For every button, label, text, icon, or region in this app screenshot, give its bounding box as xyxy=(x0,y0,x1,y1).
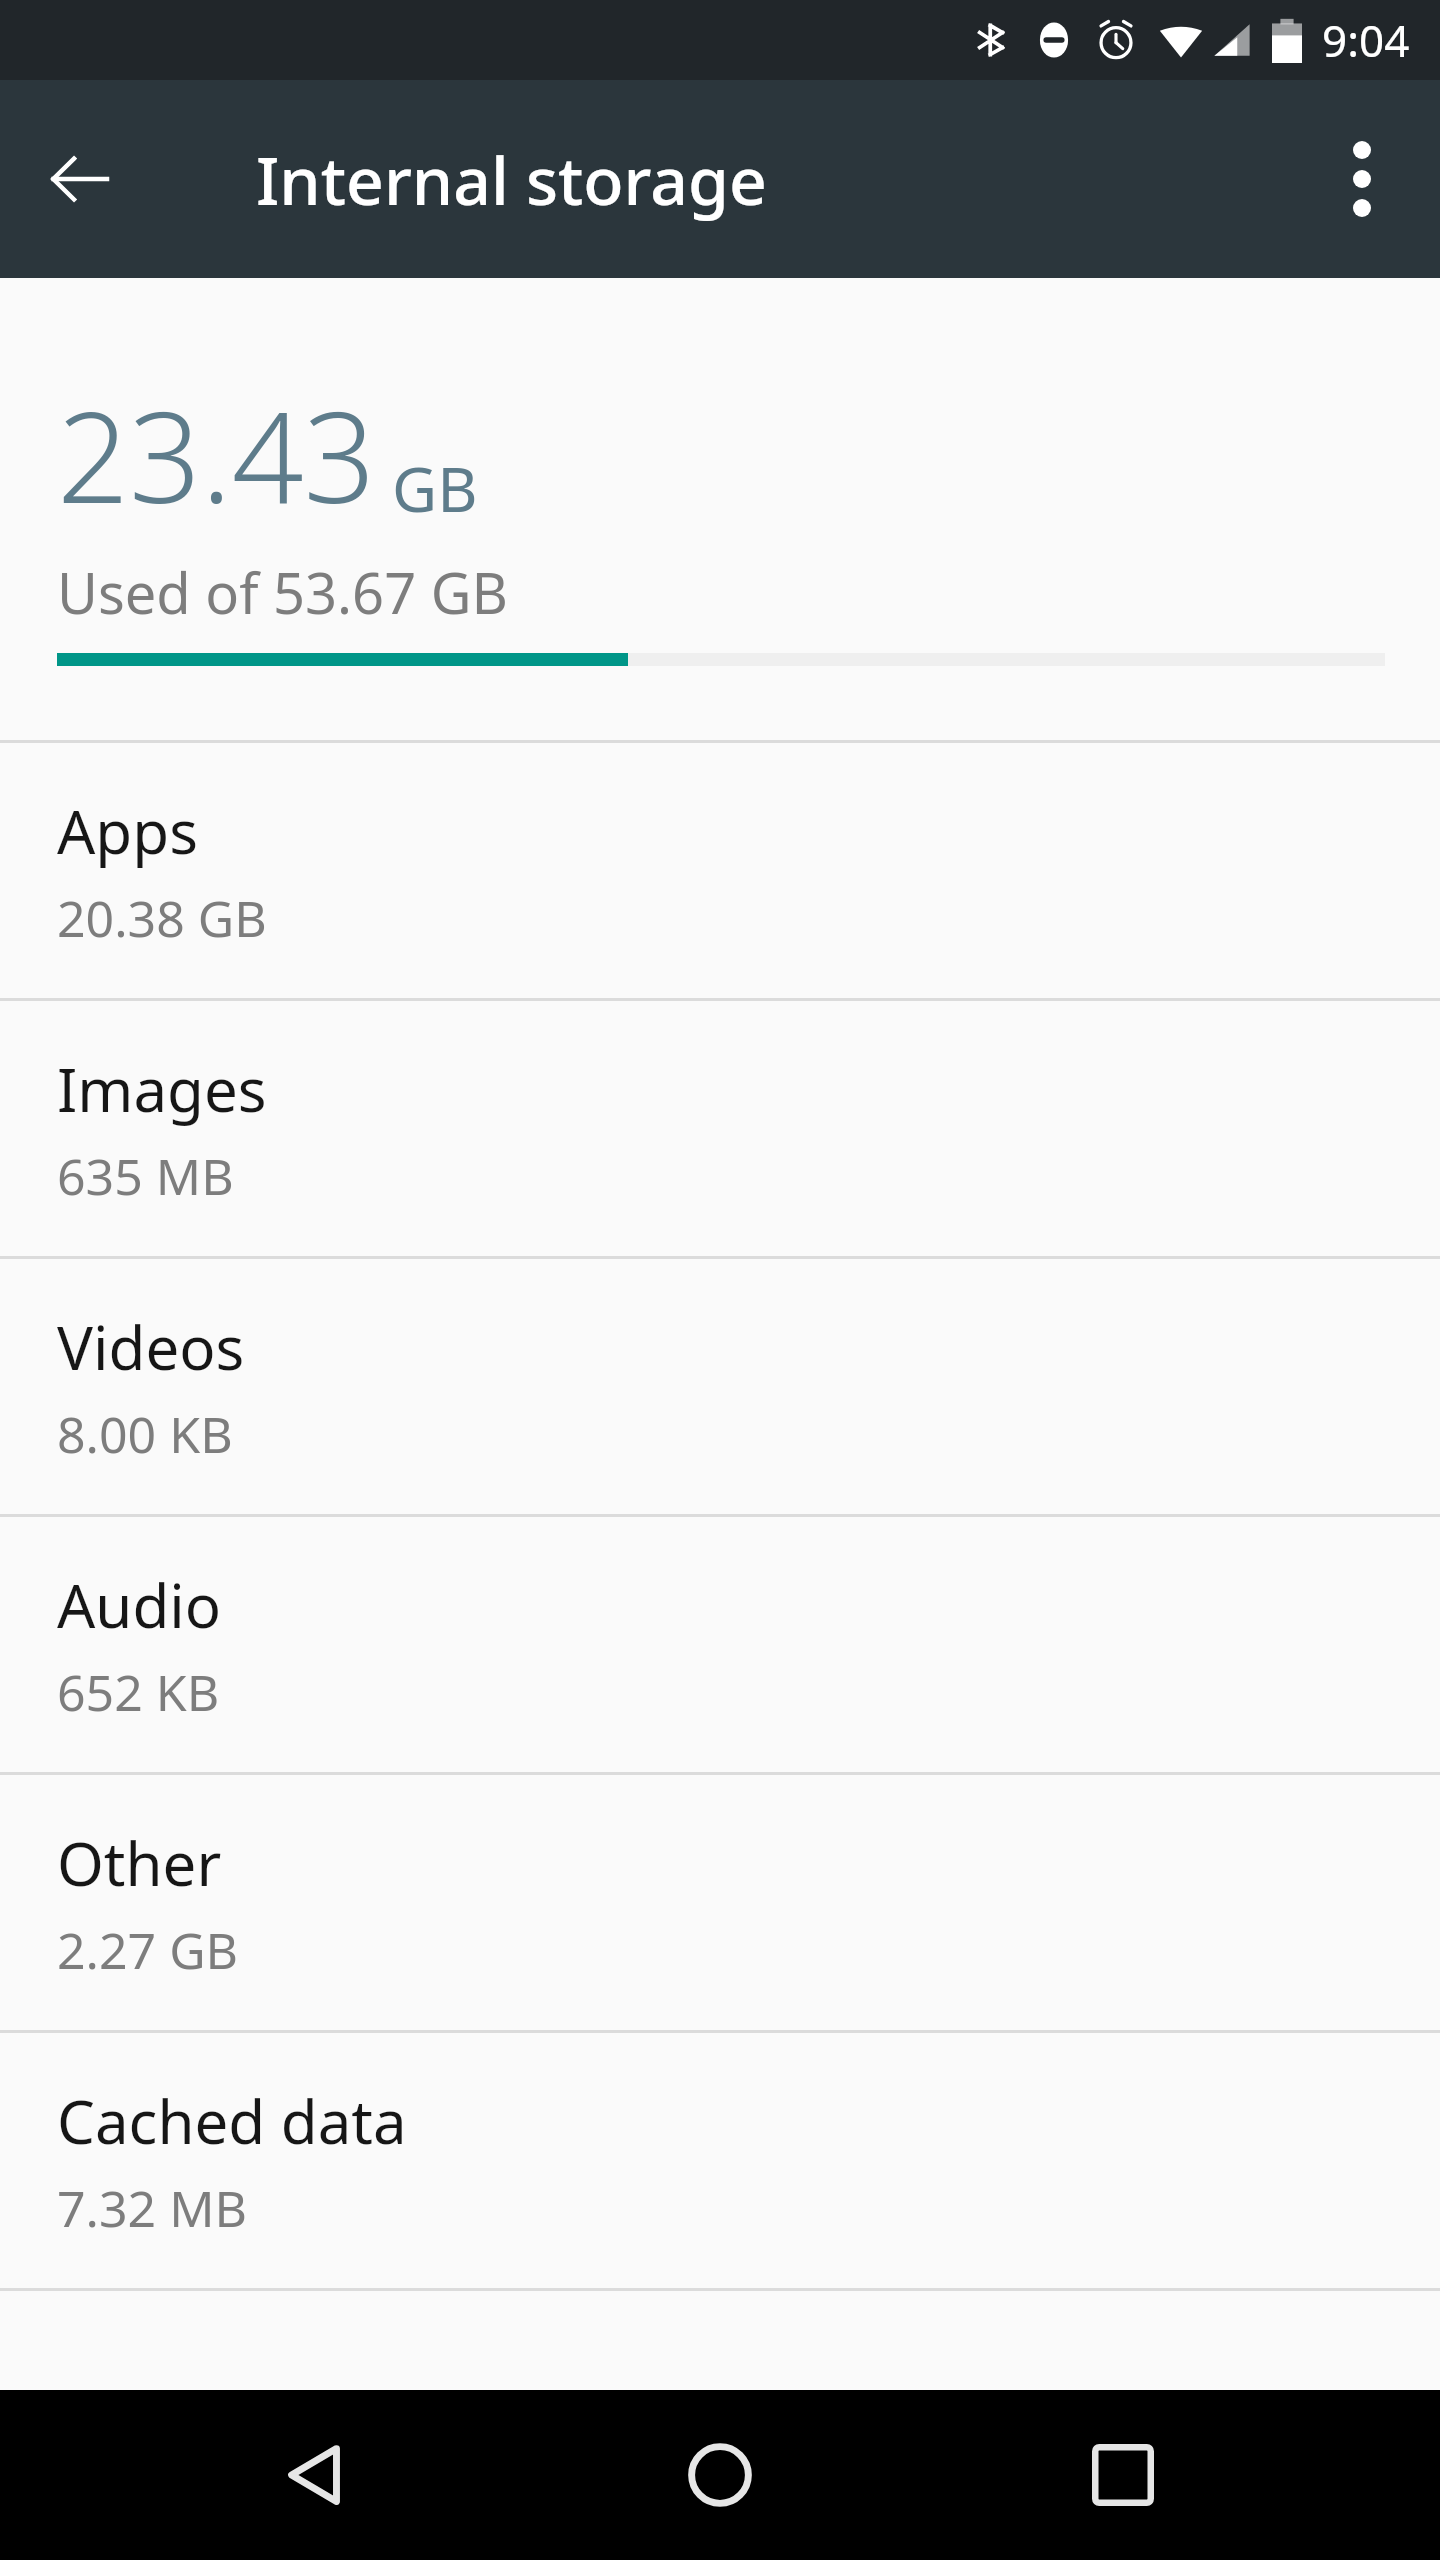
staticText: 23.43 xyxy=(57,368,376,540)
staticText: Internal storage xyxy=(256,134,767,224)
staticText: 8.00 KB xyxy=(57,1400,233,1468)
button[interactable]: Home xyxy=(635,2390,805,2560)
staticText: 2.27 GB xyxy=(57,1916,239,1984)
staticText: Audio xyxy=(57,1564,222,1646)
button[interactable]: More options xyxy=(1306,123,1418,235)
staticText: 7.32 MB xyxy=(57,2174,248,2242)
staticText: Apps xyxy=(57,790,198,872)
button[interactable]: Back xyxy=(24,123,136,235)
button[interactable]: Back xyxy=(233,2390,403,2560)
button[interactable]: Cached data xyxy=(0,2033,1440,2288)
button[interactable]: Images xyxy=(0,1001,1440,1256)
staticText: 20.38 GB xyxy=(57,884,267,952)
staticText: 635 MB xyxy=(57,1142,234,1210)
button[interactable]: Explore xyxy=(0,2291,1440,2546)
staticText: Cached data xyxy=(57,2080,407,2162)
staticText: GB xyxy=(392,446,478,530)
staticText: Videos xyxy=(57,1306,245,1388)
button[interactable]: Audio xyxy=(0,1517,1440,1772)
staticText: Other xyxy=(57,1822,222,1904)
staticText: Used of 53.67 GB xyxy=(57,554,508,630)
button[interactable]: Videos xyxy=(0,1259,1440,1514)
staticText: 9:04 xyxy=(1322,10,1410,70)
staticText: Explore xyxy=(57,2378,269,2460)
staticText: 652 KB xyxy=(57,1658,220,1726)
button[interactable]: Other xyxy=(0,1775,1440,2030)
button[interactable]: Recent apps xyxy=(1038,2390,1208,2560)
button[interactable]: Apps xyxy=(0,743,1440,998)
staticText: Images xyxy=(57,1048,267,1130)
